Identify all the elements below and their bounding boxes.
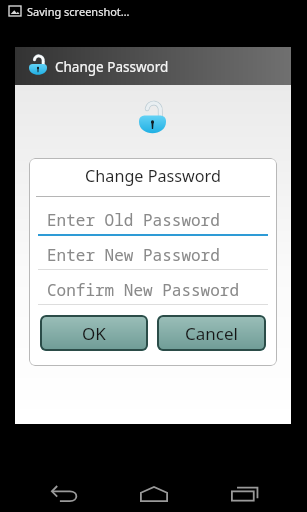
button[interactable]: Recents: [215, 470, 275, 512]
staticText: Change Password: [55, 58, 169, 76]
staticText: OK: [82, 322, 106, 345]
button[interactable]: Cancel: [157, 315, 266, 351]
staticText: Confirm New Password: [47, 279, 240, 301]
staticText: Enter Old Password: [47, 209, 220, 231]
staticText: Change Password: [29, 165, 277, 187]
button[interactable]: OK: [40, 315, 148, 351]
button[interactable]: Back: [34, 470, 94, 512]
button[interactable]: Home: [124, 470, 184, 512]
staticText: Cancel: [185, 322, 238, 345]
staticText: Saving screenshot…: [27, 4, 130, 19]
staticText: Enter New Password: [47, 244, 220, 266]
